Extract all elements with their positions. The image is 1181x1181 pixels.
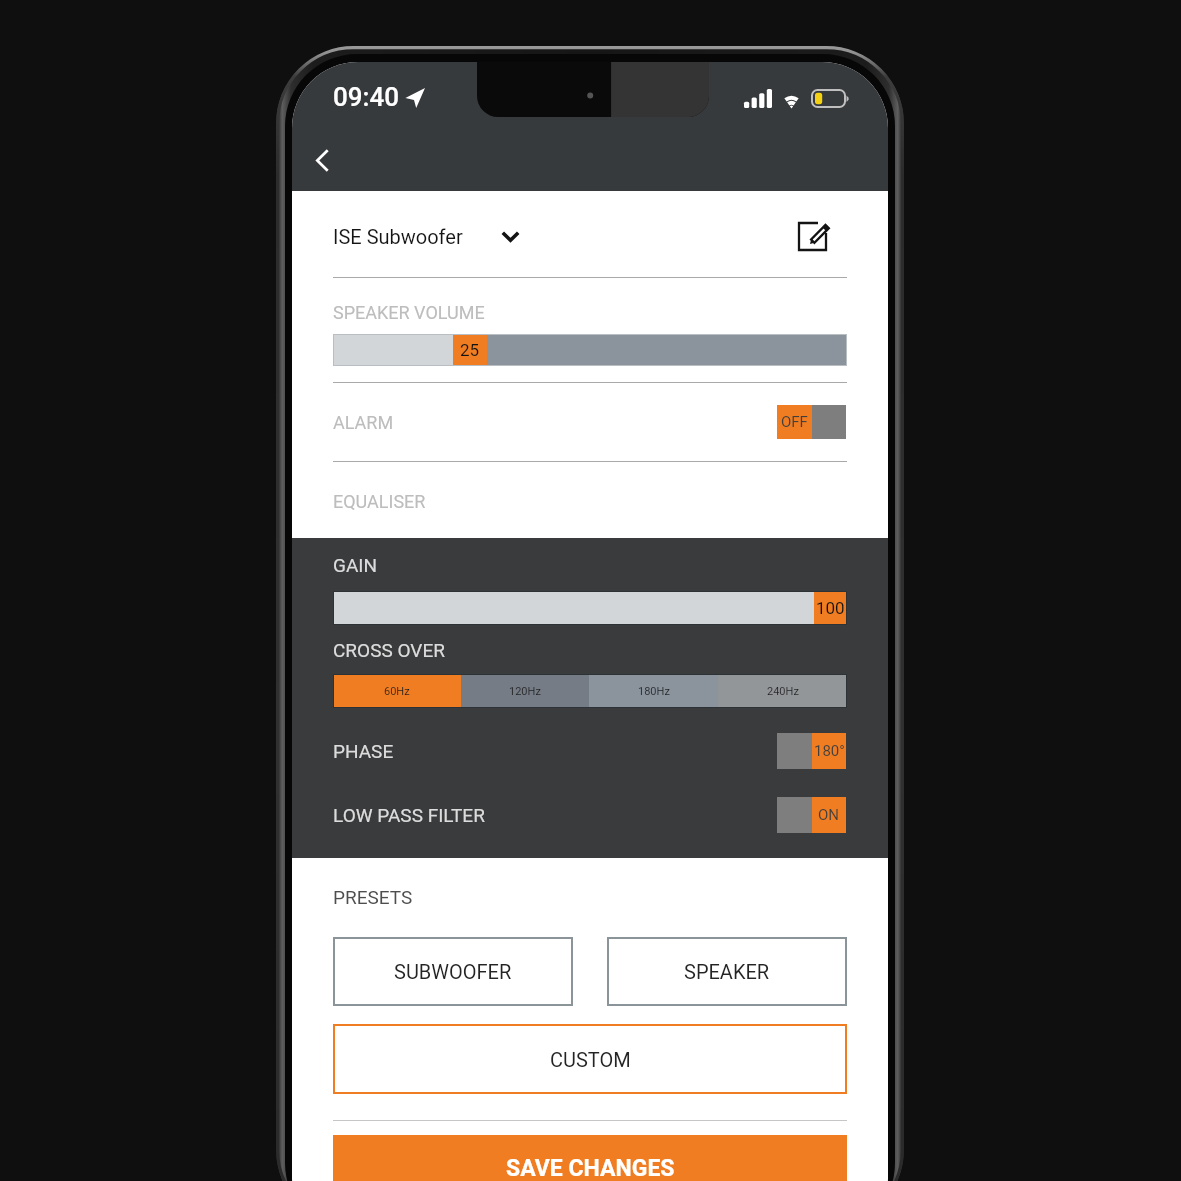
staticText: ISE Subwoofer — [333, 225, 463, 248]
button[interactable]: SUBWOOFER — [333, 937, 573, 1006]
staticText: SPEAKER VOLUME — [333, 302, 485, 323]
staticText: 100 — [816, 598, 845, 618]
button[interactable]: Select device — [488, 214, 532, 258]
button[interactable]: ON — [777, 797, 846, 833]
button[interactable]: OFF — [777, 405, 846, 439]
button[interactable]: Back — [298, 136, 346, 184]
staticText: OFF — [781, 413, 808, 431]
button[interactable]: CUSTOM — [333, 1024, 847, 1094]
button[interactable]: SAVE CHANGES — [333, 1135, 847, 1181]
staticText: 180Hz — [638, 685, 670, 698]
button[interactable]: 240Hz — [718, 674, 847, 708]
staticText: SPEAKER — [684, 960, 770, 983]
staticText: SAVE CHANGES — [506, 1155, 675, 1181]
staticText: 09:40 — [333, 82, 400, 112]
button[interactable]: Edit — [792, 210, 840, 258]
staticText: 240Hz — [767, 685, 799, 698]
staticText: 180° — [814, 742, 845, 760]
staticText: GAIN — [333, 554, 378, 576]
staticText: CROSS OVER — [333, 639, 445, 661]
staticText: 120Hz — [509, 685, 541, 698]
staticText: LOW PASS FILTER — [333, 804, 485, 826]
button[interactable]: 180° — [777, 733, 846, 769]
button[interactable]: 120Hz — [461, 674, 589, 708]
staticText: EQUALISER — [333, 491, 426, 512]
button[interactable]: 100 — [333, 591, 847, 625]
staticText: PHASE — [333, 740, 394, 762]
staticText: 60Hz — [384, 685, 410, 698]
staticText: CUSTOM — [550, 1048, 631, 1071]
button[interactable]: 180Hz — [589, 674, 718, 708]
staticText: ALARM — [333, 412, 394, 433]
button[interactable]: 25 — [333, 334, 847, 366]
staticText: SUBWOOFER — [394, 960, 512, 983]
staticText: PRESETS — [333, 886, 413, 908]
staticText: 25 — [460, 340, 480, 360]
button[interactable]: 60Hz — [333, 674, 461, 708]
staticText: ON — [818, 806, 840, 824]
button[interactable]: SPEAKER — [607, 937, 847, 1006]
